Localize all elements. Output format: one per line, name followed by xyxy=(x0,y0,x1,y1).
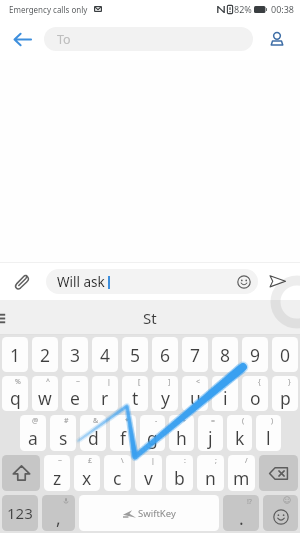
staticText: 00:38 xyxy=(271,3,295,15)
staticText: Emergency calls only xyxy=(9,4,88,15)
staticText: St xyxy=(143,308,157,328)
button[interactable]: - xyxy=(140,415,165,451)
button[interactable]: space xyxy=(79,495,219,531)
button[interactable]: Add contact xyxy=(254,18,300,60)
staticText: f xyxy=(120,426,127,450)
button[interactable]: Back xyxy=(0,18,44,60)
staticText: 8 xyxy=(220,343,231,367)
staticText: 4 xyxy=(100,343,111,367)
staticText: % xyxy=(15,377,21,387)
button[interactable]: } xyxy=(272,376,298,411)
staticText: ) xyxy=(271,416,274,426)
button[interactable]: Send xyxy=(255,262,300,300)
button[interactable]: ( xyxy=(227,415,252,451)
button[interactable]: emoji xyxy=(263,495,298,531)
staticText: l xyxy=(266,426,271,450)
staticText: 0 xyxy=(280,343,291,367)
staticText: 123 xyxy=(7,503,33,523)
button[interactable]: # xyxy=(50,415,76,451)
staticText: ] xyxy=(168,377,171,387)
staticText: \ xyxy=(121,456,124,466)
staticText: 9 xyxy=(250,343,261,367)
staticText: > xyxy=(226,377,231,387)
staticText: & xyxy=(93,416,99,426)
button[interactable]: ) xyxy=(256,415,281,451)
staticText: m xyxy=(233,466,250,490)
button[interactable]: @ xyxy=(20,415,46,451)
button[interactable]: < xyxy=(182,376,208,411)
staticText: ~ xyxy=(76,377,81,387)
button[interactable]: 4 xyxy=(92,337,118,372)
button[interactable]: del xyxy=(259,455,298,491)
button[interactable]: Emoji xyxy=(236,274,252,290)
button[interactable]: { xyxy=(242,376,268,411)
staticText: o xyxy=(250,386,261,410)
staticText: t xyxy=(132,386,139,410)
button[interactable]: & xyxy=(80,415,106,451)
button[interactable]: / xyxy=(228,455,255,491)
staticText: 6 xyxy=(160,343,171,367)
button[interactable]: 3 xyxy=(62,337,88,372)
button[interactable]: , xyxy=(42,495,75,531)
staticText: To xyxy=(57,31,71,48)
staticText: e xyxy=(70,386,80,410)
button[interactable]: ^ xyxy=(32,376,58,411)
button[interactable]: > xyxy=(212,376,238,411)
button[interactable]: 2 xyxy=(32,337,58,372)
button[interactable]: 6 xyxy=(152,337,178,372)
button[interactable]: Attach xyxy=(0,262,44,300)
staticText: Will ask xyxy=(57,273,105,291)
button[interactable]: 5 xyxy=(122,337,148,372)
staticText: 82% xyxy=(234,3,252,15)
staticText: w xyxy=(38,386,52,410)
button[interactable]: shift xyxy=(2,455,40,491)
staticText: h xyxy=(176,426,187,450)
staticText: ; xyxy=(215,456,217,466)
staticText: 5 xyxy=(130,343,141,367)
staticText: x xyxy=(82,466,92,490)
staticText: @ xyxy=(32,416,39,426)
button[interactable]: ] xyxy=(152,376,178,411)
button[interactable]: ; xyxy=(197,455,224,491)
button[interactable]: = xyxy=(198,415,223,451)
button[interactable]: % xyxy=(2,376,28,411)
staticText: ~ xyxy=(58,456,63,466)
button[interactable]: 9 xyxy=(242,337,268,372)
button[interactable]: Keyboard menu xyxy=(0,305,16,331)
staticText: ( xyxy=(242,416,245,426)
button[interactable]: + xyxy=(169,415,194,451)
button[interactable]: ~ xyxy=(44,455,70,491)
staticText: = xyxy=(211,416,216,426)
button[interactable]: Will ask xyxy=(46,269,258,294)
staticText: | xyxy=(107,377,111,387)
button[interactable]: | xyxy=(135,455,162,491)
staticText: 1 xyxy=(10,343,21,367)
button[interactable]: \ xyxy=(104,455,131,491)
staticText: d xyxy=(88,426,99,450)
staticText: < xyxy=(196,377,201,387)
staticText: u xyxy=(190,386,201,410)
staticText: # xyxy=(64,416,69,426)
button[interactable]: 123 xyxy=(2,495,38,531)
button[interactable]: To xyxy=(44,27,253,51)
staticText: 2 xyxy=(40,343,51,367)
button[interactable]: ~ xyxy=(62,376,88,411)
button[interactable]: 7 xyxy=(182,337,208,372)
button[interactable]: [ xyxy=(122,376,148,411)
button[interactable]: : xyxy=(166,455,193,491)
staticText: { xyxy=(258,377,261,387)
button[interactable]: 8 xyxy=(212,337,238,372)
button[interactable]: | xyxy=(92,376,118,411)
staticText: ☺ xyxy=(283,496,292,505)
staticText: c xyxy=(113,466,122,490)
staticText: z xyxy=(53,466,62,490)
staticText: / xyxy=(245,456,248,466)
button[interactable]: 0 xyxy=(272,337,298,372)
staticText: 3 xyxy=(70,343,81,367)
staticText: i xyxy=(223,386,228,410)
button[interactable]: 1 xyxy=(2,337,28,372)
button[interactable]: ⁉ xyxy=(223,495,259,531)
button[interactable]: * xyxy=(110,415,136,451)
staticText: | xyxy=(151,456,155,466)
button[interactable]: £ xyxy=(74,455,100,491)
